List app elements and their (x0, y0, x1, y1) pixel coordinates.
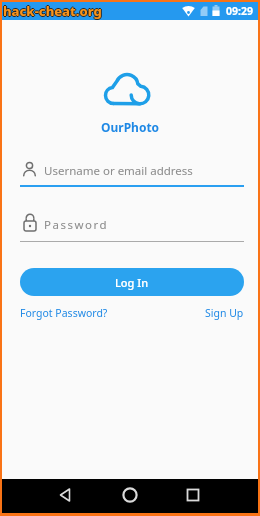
staticText: Sign Up (205, 306, 244, 320)
staticText: hack-cheat.org (3, 1, 102, 19)
staticText: OurPhoto (101, 119, 160, 135)
button[interactable] (2, 479, 88, 513)
staticText: 09:29 (226, 4, 253, 18)
button[interactable]: Forgot Password? (20, 305, 108, 321)
staticText: hack-cheat.org (3, 2, 102, 20)
staticText: Log In (115, 275, 149, 290)
button[interactable]: Password (20, 212, 244, 243)
button[interactable]: Log In (20, 268, 244, 296)
button[interactable] (88, 479, 173, 513)
staticText: hack-cheat.org (4, 2, 103, 20)
button[interactable]: Username or email address (20, 158, 244, 187)
staticText: Username or email address (44, 163, 193, 179)
button[interactable] (173, 479, 258, 513)
button[interactable]: Sign Up (198, 305, 244, 321)
staticText: Password (44, 217, 109, 233)
staticText: Forgot Password? (20, 306, 108, 320)
staticText: hack-cheat.org (2, 2, 101, 20)
staticText: hack-cheat.org (3, 3, 102, 21)
